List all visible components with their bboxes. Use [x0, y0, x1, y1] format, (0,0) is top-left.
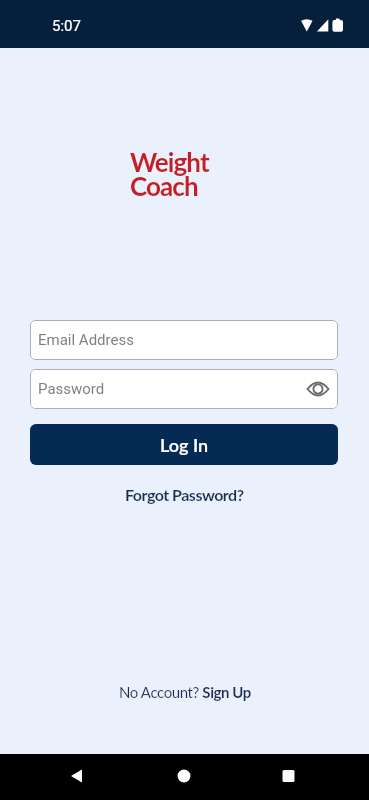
button[interactable]: [168, 760, 200, 792]
button[interactable]: Email Address: [30, 320, 338, 360]
staticText: Email Address: [38, 331, 134, 349]
button[interactable]: [306, 377, 330, 401]
button[interactable]: No Account? Sign Up: [119, 683, 251, 701]
staticText: Password: [38, 380, 105, 398]
staticText: Coach: [130, 170, 198, 201]
staticText: 5:07: [52, 17, 81, 35]
button[interactable]: Forgot Password?: [125, 485, 244, 504]
button[interactable]: [61, 760, 93, 792]
button[interactable]: Log In: [30, 424, 338, 465]
button[interactable]: [272, 760, 304, 792]
staticText: Weight: [130, 146, 209, 177]
staticText: Log In: [160, 434, 209, 456]
button[interactable]: Password: [30, 369, 338, 409]
